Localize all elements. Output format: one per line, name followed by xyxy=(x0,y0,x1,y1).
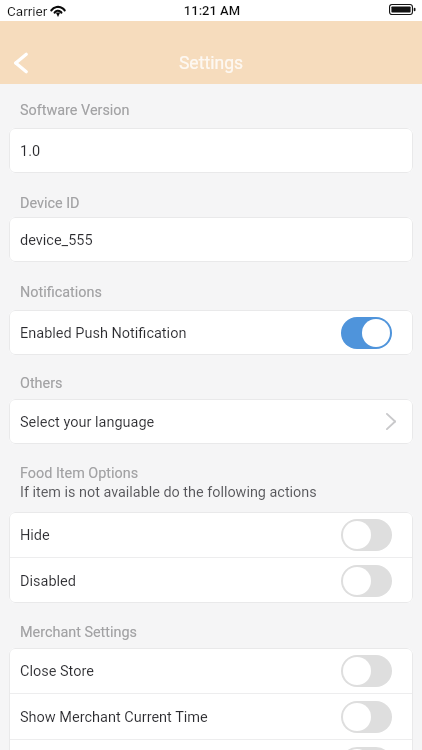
staticText: Food Item Options xyxy=(20,465,139,482)
button[interactable]: Show Merchant Current Time xyxy=(9,694,413,739)
button[interactable]: Back xyxy=(7,49,35,77)
staticText: If item is not available do the followin… xyxy=(20,484,317,501)
staticText: 1.0 xyxy=(20,143,41,160)
staticText: Show Merchant Current Time xyxy=(20,709,208,726)
button[interactable]: Off xyxy=(341,701,392,733)
staticText: Hide xyxy=(20,527,50,544)
staticText: device_555 xyxy=(20,232,93,249)
button[interactable]: Off xyxy=(341,565,392,597)
button[interactable]: Accept Orders xyxy=(9,740,413,750)
button[interactable]: Hide xyxy=(9,512,413,557)
button[interactable]: On xyxy=(341,317,392,349)
button[interactable]: Off xyxy=(341,519,392,551)
staticText: Carrier xyxy=(7,3,48,19)
staticText: Settings xyxy=(0,53,422,74)
button[interactable]: Off xyxy=(341,655,392,687)
staticText: Merchant Settings xyxy=(20,624,137,641)
staticText: Software Version xyxy=(20,102,130,119)
button[interactable]: Off xyxy=(341,747,392,750)
staticText: Enabled Push Notification xyxy=(20,325,187,342)
button[interactable]: Close Store xyxy=(9,648,413,693)
staticText: 11:21 AM xyxy=(1,3,422,18)
button[interactable]: Disabled xyxy=(9,558,413,603)
staticText: Close Store xyxy=(20,663,94,680)
staticText: Others xyxy=(20,375,63,392)
staticText: Device ID xyxy=(20,195,80,212)
staticText: Notifications xyxy=(20,284,102,301)
staticText: Select your language xyxy=(20,414,155,431)
button[interactable]: Enabled Push Notification xyxy=(9,310,413,355)
staticText: Disabled xyxy=(20,573,76,590)
button[interactable]: Select your language xyxy=(9,399,413,444)
